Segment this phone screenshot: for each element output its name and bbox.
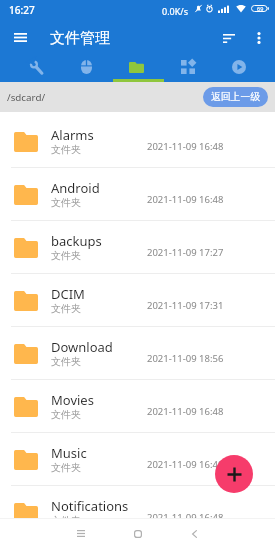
button[interactable]: Music [0,433,275,486]
staticText: 2021-11-09 16:48 [147,193,224,206]
button[interactable]: Recents [66,519,95,548]
staticText: 2021-11-09 16:48 [147,140,224,153]
button[interactable]: Media [213,54,264,82]
staticText: Android [51,179,100,197]
button[interactable]: Movies [0,380,275,433]
button[interactable]: Add [215,455,253,493]
staticText: 文件夹 [51,408,81,421]
staticText: 文件夹 [51,143,81,156]
staticText: 文件夹 [51,355,81,368]
button[interactable]: Back [180,519,209,548]
button[interactable]: Alarms [0,115,275,168]
staticText: 2021-11-09 16:48 [147,458,224,471]
staticText: 16:27 [9,3,35,17]
button[interactable]: 返回上一级 [203,87,268,107]
staticText: 2021-11-09 16:48 [147,405,224,418]
staticText: Alarms [51,126,94,144]
staticText: 69 [257,5,264,12]
button[interactable]: Home [123,519,152,548]
button[interactable]: Remote [61,54,111,82]
button[interactable]: Notifications [0,486,275,539]
staticText: 文件夹 [51,302,81,315]
button[interactable]: More options [246,25,272,51]
staticText: backups [51,232,102,250]
staticText: Movies [51,391,94,409]
button[interactable]: backups [0,221,275,274]
staticText: 文件夹 [51,461,81,474]
button[interactable]: Download [0,327,275,380]
staticText: 2021-11-09 18:56 [147,352,224,365]
button[interactable]: Sort [216,25,242,51]
button[interactable]: Files [111,54,162,82]
staticText: Notifications [51,497,129,515]
staticText: /sdcard/ [7,91,46,104]
staticText: 2021-11-09 16:48 [147,511,224,524]
button[interactable]: Android [0,168,275,221]
staticText: DCIM [51,285,85,303]
staticText: 0.0K/s [162,5,188,17]
staticText: 文件夹 [51,249,81,262]
staticText: 2021-11-09 17:31 [147,299,224,312]
staticText: Music [51,444,87,462]
button[interactable]: Tools [11,54,61,82]
staticText: 文件夹 [51,196,81,209]
staticText: 文件管理 [50,29,110,48]
staticText: 文件夹 [51,514,81,527]
staticText: 2021-11-09 17:27 [147,246,224,259]
staticText: Download [51,338,113,356]
button[interactable]: Categories [162,54,213,82]
button[interactable]: Menu [7,24,33,50]
button[interactable]: DCIM [0,274,275,327]
staticText: 返回上一级 [211,91,260,103]
